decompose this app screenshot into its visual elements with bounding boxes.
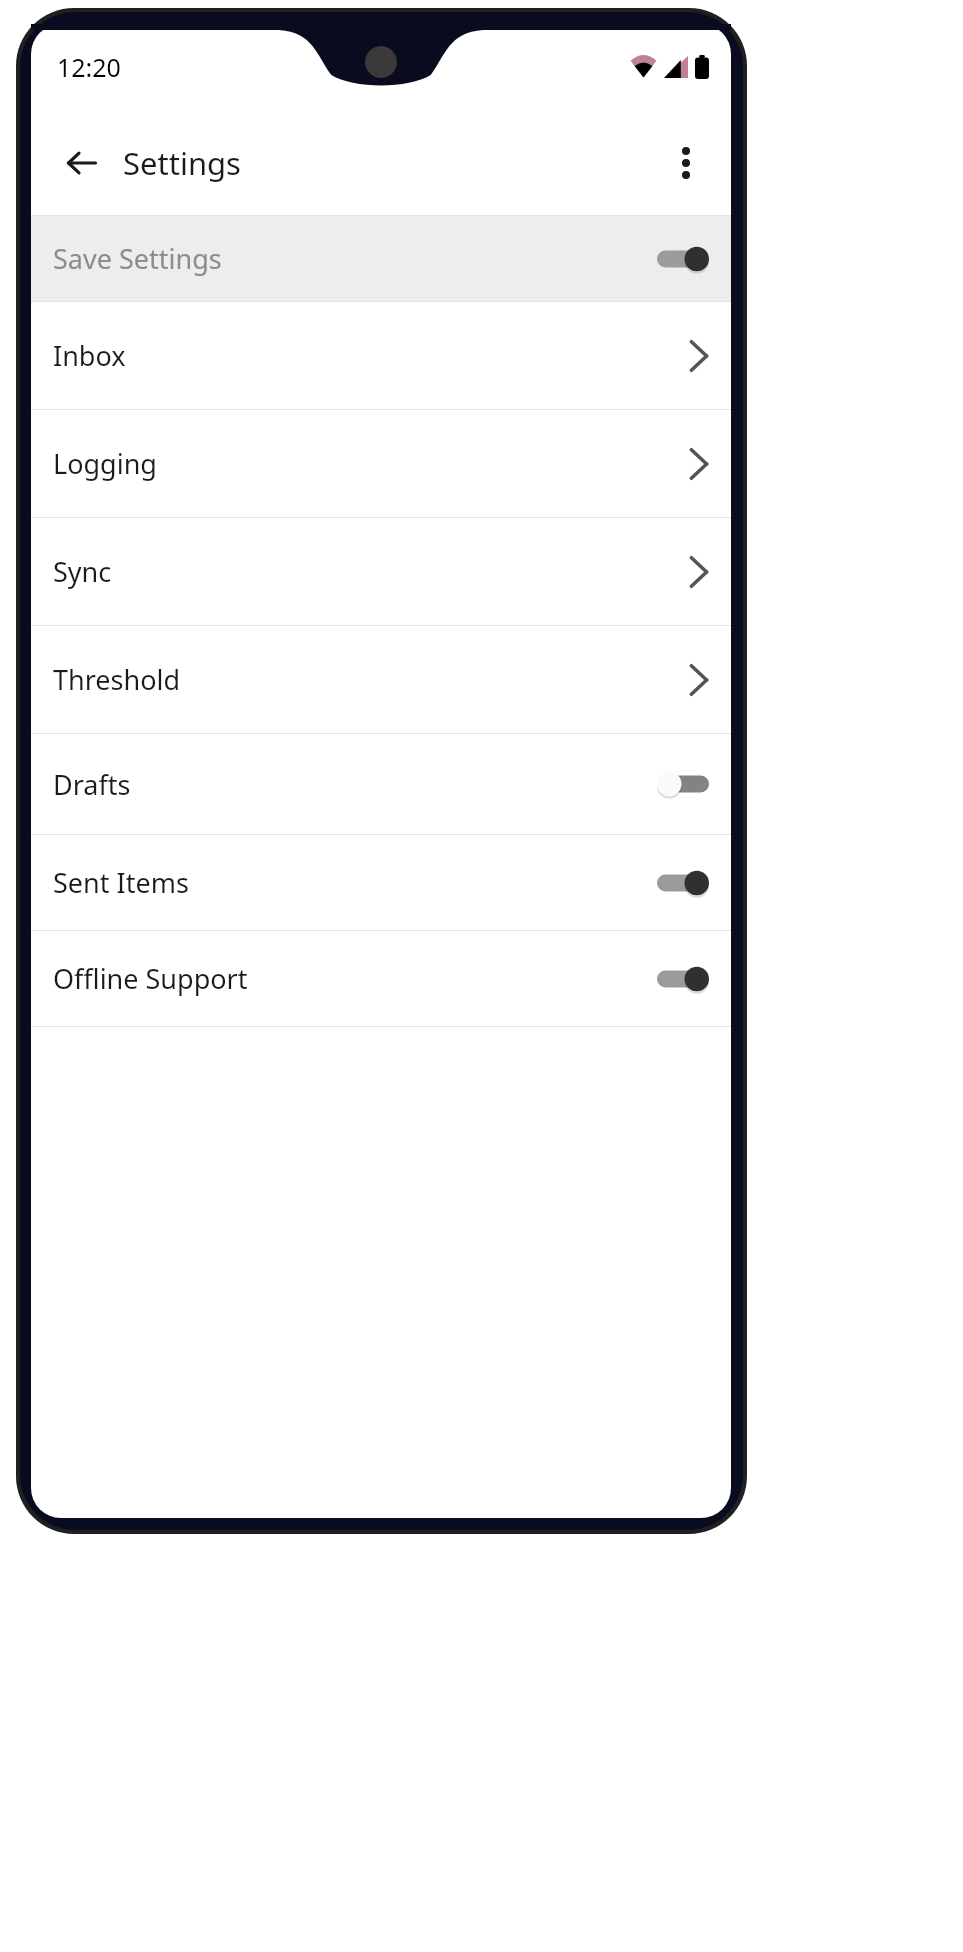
button[interactable]: Sync xyxy=(31,518,731,625)
staticText: Settings xyxy=(123,142,241,184)
staticText: Sent Items xyxy=(53,864,657,901)
button[interactable]: Back xyxy=(55,136,109,190)
button[interactable]: Offline Support xyxy=(31,931,731,1026)
staticText: Logging xyxy=(53,445,689,482)
staticText: 12:20 xyxy=(57,50,121,84)
staticText: Drafts xyxy=(53,766,657,803)
button[interactable]: Drafts xyxy=(31,734,731,834)
staticText: Offline Support xyxy=(53,960,657,997)
staticText: Save Settings xyxy=(53,240,657,277)
button[interactable]: Inbox xyxy=(31,302,731,409)
button[interactable]: Sent Items xyxy=(31,835,731,930)
button[interactable]: Save Settings xyxy=(31,216,731,301)
button[interactable]: More options xyxy=(659,136,713,190)
button[interactable]: Threshold xyxy=(31,626,731,733)
staticText: Threshold xyxy=(53,661,689,698)
staticText: Sync xyxy=(53,553,689,590)
button[interactable]: Logging xyxy=(31,410,731,517)
staticText: Inbox xyxy=(53,337,689,374)
